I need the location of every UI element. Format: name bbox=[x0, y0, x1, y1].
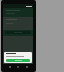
button[interactable]: Home bbox=[16, 65, 20, 69]
button[interactable]: Back bbox=[8, 65, 12, 69]
button[interactable]: Recent apps bbox=[25, 65, 29, 69]
button[interactable] bbox=[5, 31, 31, 34]
button[interactable] bbox=[6, 59, 30, 62]
